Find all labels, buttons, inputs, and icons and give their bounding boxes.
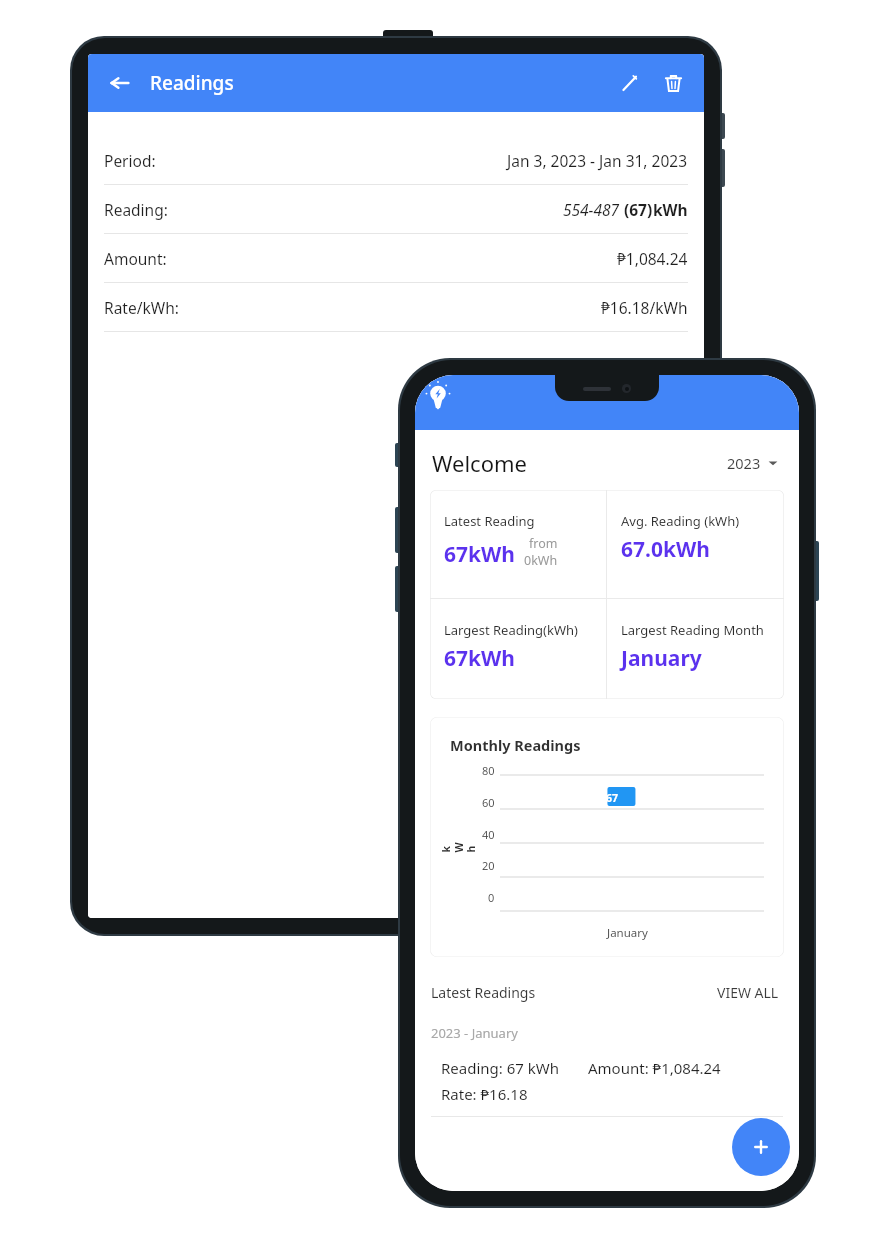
staticText: Rate/kWh: [104,297,179,318]
button[interactable]: App logo [423,381,453,411]
staticText: Jan 3, 2023 - Jan 31, 2023 [507,150,688,171]
staticText: 60 [482,795,495,810]
button[interactable]: Rate/kWh: [88,283,704,332]
staticText: 80 [482,763,495,778]
button[interactable]: Period: [88,136,704,185]
staticText: 67kWh [444,540,516,569]
button[interactable]: 2023 - January [415,1024,799,1117]
button[interactable]: Amount: [88,234,704,283]
staticText: January [607,925,648,941]
staticText: Readings [150,70,234,96]
staticText: Welcome [432,448,527,478]
staticText: Amount: ₱1,084.24 [588,1058,721,1078]
staticText: 67.0kWh [621,535,710,564]
staticText: (67) [624,199,653,220]
button[interactable]: Add reading [732,1118,790,1176]
staticText: ₱1,084.24 [617,248,688,269]
staticText: from [529,535,558,552]
staticText: Latest Reading [444,512,535,530]
staticText: kWh [653,199,688,220]
button[interactable]: Monthly Readings [430,717,784,957]
staticText: Amount: [104,248,167,269]
staticText: 0kWh [524,552,558,569]
button[interactable]: Avg. Reading (kWh) [607,490,784,598]
staticText: 20 [482,858,495,873]
staticText: January [621,644,702,673]
staticText: 40 [482,827,495,842]
staticText: Largest Reading(kWh) [444,621,578,639]
staticText: 67 [606,791,619,805]
button[interactable]: Reading: [88,185,704,234]
staticText: 0 [488,890,495,905]
staticText: Period: [104,150,156,171]
staticText: Reading: 67 kWh [441,1058,560,1078]
button[interactable]: Latest Reading [430,490,606,598]
staticText: 2023 - January [431,1024,518,1042]
button[interactable]: Delete [656,66,690,100]
button[interactable]: Largest Reading(kWh) [430,599,606,699]
staticText: Rate: ₱16.18 [441,1084,528,1104]
staticText: Reading: [104,199,168,220]
staticText: Largest Reading Month [621,621,764,639]
button[interactable]: Largest Reading Month [607,599,784,699]
staticText: 2023 [727,453,761,473]
button[interactable]: Back [104,67,136,99]
button[interactable]: VIEW ALL [713,979,783,1006]
staticText: Monthly Readings [450,735,581,755]
staticText: 67kWh [444,644,516,673]
staticText: kWh [438,836,477,852]
staticText: ₱16.18/kWh [601,297,688,318]
button[interactable]: 2023 [723,449,782,477]
staticText: VIEW ALL [717,983,779,1002]
button[interactable]: Edit [612,66,646,100]
staticText: 554-487 [563,199,624,220]
staticText: Avg. Reading (kWh) [621,512,740,530]
staticText: Latest Readings [431,983,536,1002]
